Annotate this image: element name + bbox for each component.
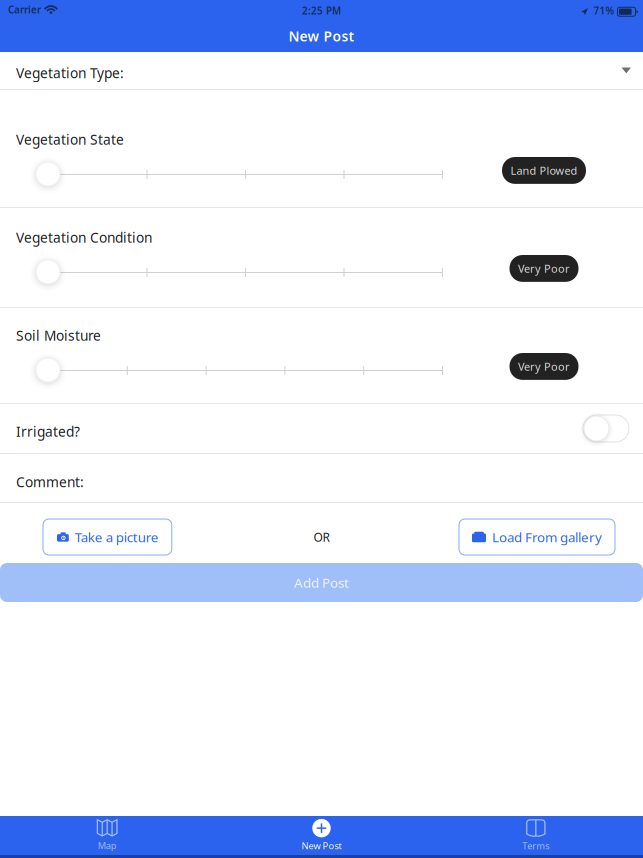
button[interactable]: Vegetation Type: xyxy=(0,52,643,89)
button[interactable]: Terms xyxy=(429,816,643,855)
staticText: OR xyxy=(313,529,329,545)
button[interactable]: Take a picture xyxy=(43,519,172,555)
staticText: 2:25 PM xyxy=(302,4,341,17)
staticText: Land Plowed xyxy=(510,163,577,178)
staticText: Carrier xyxy=(8,3,41,16)
staticText: Very Poor xyxy=(518,261,570,276)
staticText: Vegetation Condition xyxy=(16,228,152,247)
button[interactable]: New Post xyxy=(214,816,429,855)
staticText: New Post xyxy=(288,27,354,45)
staticText: Vegetation Type: xyxy=(16,63,124,82)
staticText: Very Poor xyxy=(518,359,570,374)
staticText: Soil Moisture xyxy=(16,326,101,345)
button[interactable]: Load From gallery xyxy=(459,519,615,555)
staticText: Take a picture xyxy=(75,528,159,546)
staticText: Comment: xyxy=(16,472,84,491)
staticText: 71% xyxy=(593,4,614,17)
button[interactable]: Add Post xyxy=(0,563,643,602)
button[interactable]: Irrigated xyxy=(583,415,629,442)
staticText: Vegetation State xyxy=(16,130,124,149)
staticText: New Post xyxy=(301,839,341,852)
staticText: Load From gallery xyxy=(492,528,602,546)
staticText: Map xyxy=(98,839,117,852)
staticText: Add Post xyxy=(294,573,349,592)
button[interactable]: Map xyxy=(0,816,214,855)
staticText: Terms xyxy=(522,839,549,852)
staticText: Irrigated? xyxy=(16,422,80,441)
